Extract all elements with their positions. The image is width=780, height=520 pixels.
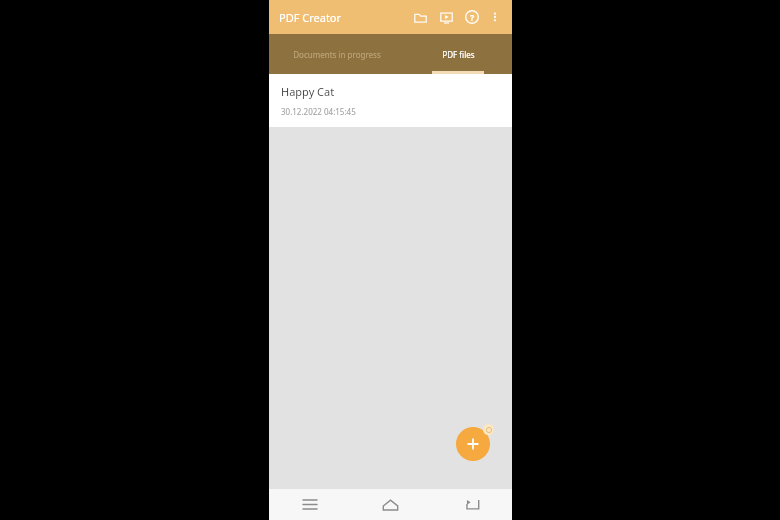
button[interactable]: Help [460,5,484,29]
button[interactable]: Documents in progress [269,34,404,74]
staticText: Happy Cat [281,84,335,99]
staticText: 30.12.2022 04:15:45 [281,106,356,117]
button[interactable]: Back [431,489,512,520]
staticText: PDF Creator [279,10,342,25]
button[interactable]: PDF files [404,34,512,74]
button[interactable]: More create options [483,424,494,435]
button[interactable]: Recent apps [269,489,350,520]
staticText: Documents in progress [293,49,381,60]
staticText: ? [470,11,475,23]
button[interactable]: Create new PDF [456,427,490,461]
button[interactable]: Home [350,489,431,520]
button[interactable]: Preview [434,5,458,29]
button[interactable]: New document [408,5,432,29]
staticText: PDF files [442,49,475,60]
button[interactable]: More options [484,6,506,28]
button[interactable]: Happy Cat [269,74,512,127]
